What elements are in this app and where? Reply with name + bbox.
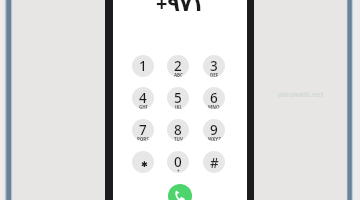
button[interactable]: 5: [167, 87, 189, 109]
button[interactable]: 7: [132, 119, 154, 141]
staticText: TUV: [174, 136, 183, 141]
staticText: WXYZ: [208, 136, 221, 141]
staticText: ABC: [174, 72, 183, 77]
button[interactable]: 6: [203, 87, 225, 109]
staticText: 9: [210, 121, 218, 139]
staticText: 7: [139, 121, 147, 139]
staticText: 0: [174, 153, 182, 171]
button[interactable]: 4: [132, 87, 154, 109]
button[interactable]: 1: [132, 55, 154, 77]
staticText: +: [177, 168, 180, 173]
button[interactable]: 8: [167, 119, 189, 141]
staticText: PQRS: [137, 136, 149, 141]
button[interactable]: Call: [168, 184, 192, 200]
button[interactable]: 3: [203, 55, 225, 77]
staticText: 6: [210, 89, 218, 107]
staticText: 3: [210, 57, 218, 75]
button[interactable]: #: [203, 151, 225, 173]
staticText: GHI: [139, 104, 148, 109]
staticText: MNO: [208, 104, 220, 109]
staticText: almawkib.net: [278, 90, 324, 100]
button[interactable]: 0: [167, 151, 189, 173]
staticText: DEF: [210, 72, 219, 77]
staticText: 5: [174, 89, 182, 107]
staticText: 1: [139, 57, 147, 75]
staticText: #: [210, 154, 219, 172]
staticText: 2: [174, 57, 182, 75]
button[interactable]: [132, 151, 154, 173]
staticText: 8: [174, 121, 182, 139]
staticText: 4: [139, 89, 147, 107]
staticText: JKL: [175, 104, 182, 109]
staticText: +٩٧١: [156, 0, 205, 17]
button[interactable]: 2: [167, 55, 189, 77]
button[interactable]: 9: [203, 119, 225, 141]
